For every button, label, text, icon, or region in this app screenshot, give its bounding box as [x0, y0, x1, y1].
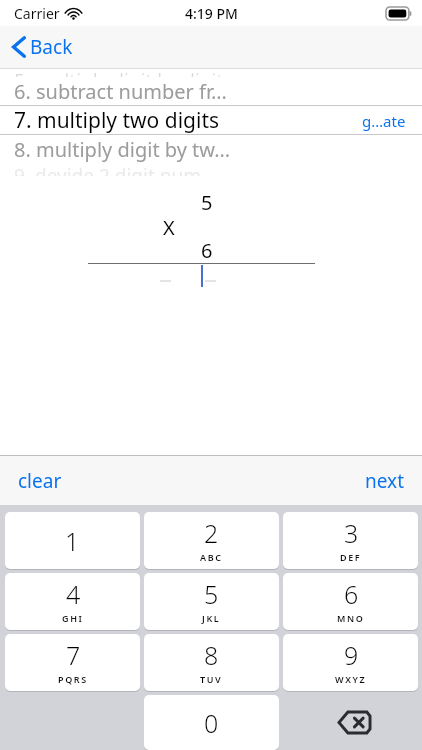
- button[interactable]: 6: [283, 573, 418, 630]
- staticText: Back: [30, 34, 73, 60]
- staticText: 5: [201, 189, 213, 216]
- staticText: 9: [344, 638, 359, 672]
- staticText: 6: [201, 237, 213, 264]
- staticText: ABC: [200, 551, 223, 563]
- staticText: subtract number fr…: [36, 78, 227, 105]
- staticText: MNO: [337, 612, 365, 624]
- staticText: 8: [204, 638, 219, 672]
- button[interactable]: next: [357, 462, 412, 500]
- staticText: multiply two digits: [37, 106, 220, 135]
- button[interactable]: 4: [5, 573, 140, 630]
- staticText: 4:19 PM: [185, 4, 238, 23]
- staticText: DEF: [340, 551, 362, 563]
- button[interactable]: 3: [283, 512, 418, 569]
- staticText: WXYZ: [335, 673, 367, 685]
- button[interactable]: 6.: [0, 77, 422, 105]
- staticText: JKL: [202, 612, 221, 624]
- staticText: clear: [18, 468, 62, 494]
- staticText: multiply digit by tw…: [36, 136, 231, 163]
- staticText: 5: [204, 577, 219, 611]
- staticText: next: [365, 468, 404, 494]
- button[interactable]: 5: [144, 573, 279, 630]
- staticText: 5. multiply digit by digit: [14, 68, 224, 77]
- staticText: 0: [204, 706, 219, 740]
- button[interactable]: Delete: [287, 695, 422, 750]
- button[interactable]: 2: [144, 512, 279, 569]
- staticText: GHI: [62, 612, 84, 624]
- staticText: 1: [65, 524, 80, 558]
- button[interactable]: 1: [5, 512, 140, 569]
- staticText: 3: [344, 516, 359, 550]
- staticText: PQRS: [58, 673, 88, 685]
- button[interactable]: Back: [8, 30, 77, 64]
- staticText: 2: [204, 516, 219, 550]
- staticText: 7.: [14, 106, 32, 135]
- staticText: 4: [66, 577, 81, 611]
- button[interactable]: g…ate: [356, 107, 412, 135]
- staticText: 7: [66, 638, 81, 672]
- button[interactable]: 8: [144, 634, 279, 691]
- staticText: g…ate: [362, 111, 406, 131]
- button[interactable]: 0: [144, 695, 279, 750]
- button[interactable]: 8.: [0, 135, 422, 163]
- staticText: 6.: [14, 78, 31, 105]
- staticText: X: [163, 214, 175, 241]
- staticText: TUV: [200, 673, 223, 685]
- staticText: 9.: [14, 163, 30, 176]
- staticText: Carrier: [14, 4, 60, 23]
- staticText: 8.: [14, 136, 31, 163]
- button[interactable]: 9: [283, 634, 418, 691]
- button[interactable]: 7: [5, 634, 140, 691]
- staticText: devide 2 digit num…: [35, 163, 216, 176]
- staticText: 6: [344, 577, 359, 611]
- button[interactable]: clear: [10, 462, 70, 500]
